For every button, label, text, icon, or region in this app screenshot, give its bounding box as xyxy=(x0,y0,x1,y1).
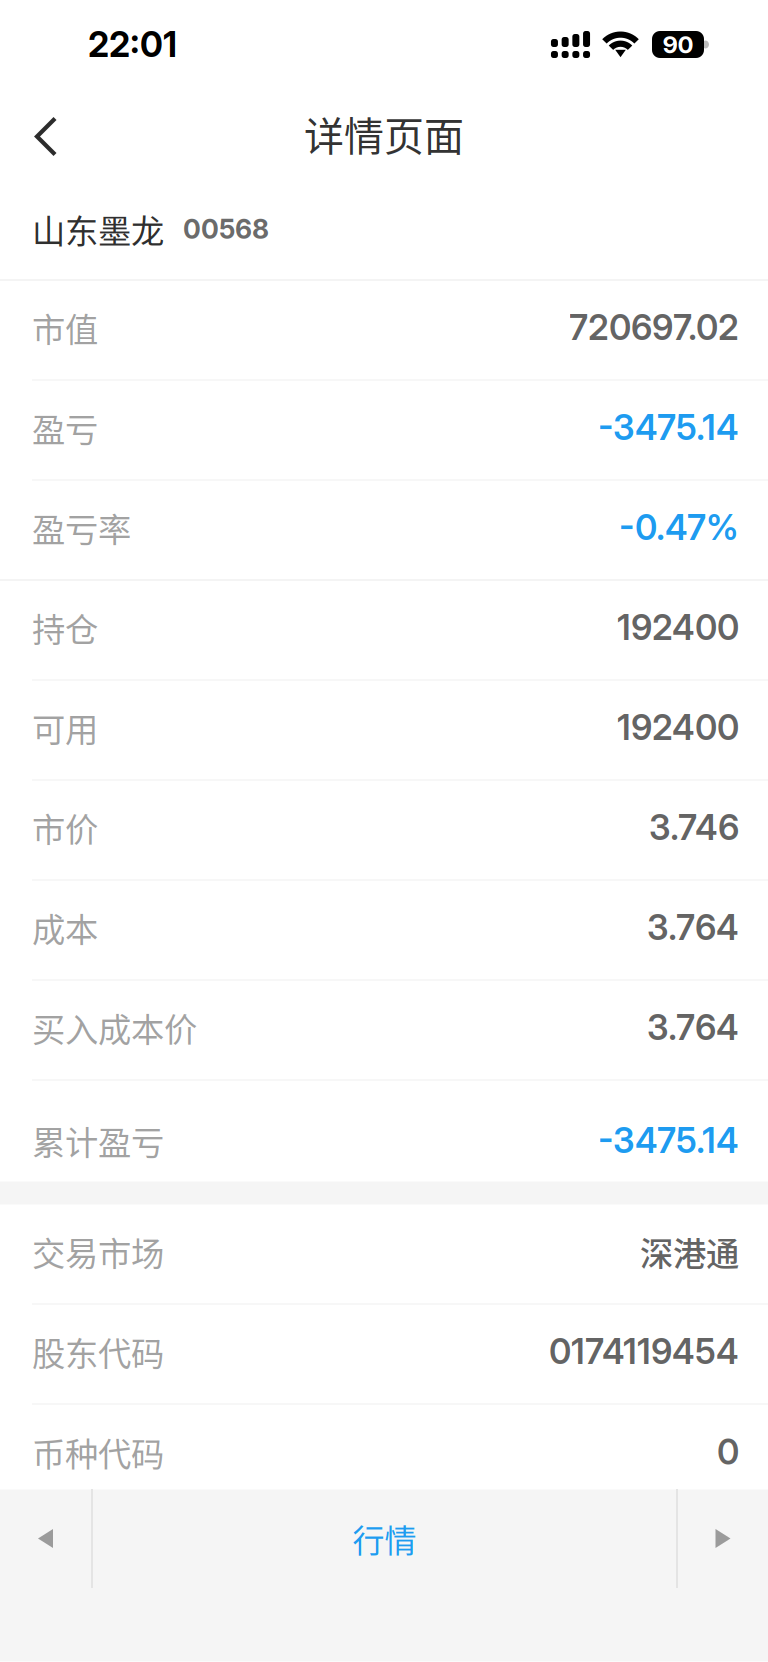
staticText: -3475.14 xyxy=(598,406,739,448)
staticText: 3.764 xyxy=(647,1006,739,1048)
button[interactable]: 行情 xyxy=(93,1489,676,1587)
staticText: 行情 xyxy=(352,1515,416,1562)
staticText: 深港通 xyxy=(640,1227,739,1276)
staticText: 持仓 xyxy=(32,603,98,652)
staticText: 盈亏率 xyxy=(32,503,131,552)
staticText: 累计盈亏 xyxy=(32,1116,164,1165)
staticText: 3.746 xyxy=(649,806,739,848)
staticText: 市值 xyxy=(32,303,98,352)
staticText: 192400 xyxy=(617,706,739,748)
button[interactable]: Previous xyxy=(0,1489,91,1587)
staticText: 可用 xyxy=(32,703,98,752)
staticText: 交易市场 xyxy=(32,1227,164,1276)
staticText: 720697.02 xyxy=(569,306,739,348)
staticText: 0 xyxy=(717,1431,739,1473)
staticText: 00568 xyxy=(183,213,269,245)
staticText: -3475.14 xyxy=(598,1119,739,1161)
staticText: 山东墨龙 xyxy=(32,205,164,253)
staticText: 22:01 xyxy=(88,23,177,65)
staticText: 买入成本价 xyxy=(32,1003,197,1052)
staticText: 3.764 xyxy=(647,906,739,948)
staticText: 0174119454 xyxy=(549,1330,739,1372)
button[interactable]: Next xyxy=(678,1489,768,1587)
staticText: -0.47% xyxy=(619,506,739,548)
button[interactable]: Back xyxy=(16,88,76,184)
staticText: 股东代码 xyxy=(32,1327,164,1376)
staticText: 192400 xyxy=(617,606,739,648)
staticText: 90 xyxy=(662,30,693,59)
staticText: 市价 xyxy=(32,803,98,852)
staticText: 币种代码 xyxy=(32,1428,164,1476)
staticText: 盈亏 xyxy=(32,403,98,452)
staticText: 成本 xyxy=(32,903,98,952)
staticText: 详情页面 xyxy=(304,104,464,162)
